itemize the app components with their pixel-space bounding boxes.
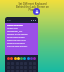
staticText: Good Evening (7, 24, 23, 27)
button[interactable]: Emoji (30, 57, 33, 60)
staticText: Ladies and Gentlemen, I'm getting to the… (7, 27, 28, 48)
button[interactable]: Emoji (14, 57, 17, 60)
button[interactable]: Emoji (23, 57, 26, 60)
button[interactable]: Emoji (10, 57, 13, 60)
button[interactable]: Emoji (33, 57, 36, 60)
button[interactable]: Lock (33, 8, 40, 15)
staticText: 9:41 (7, 19, 12, 22)
button[interactable]: Emoji (20, 57, 23, 60)
button[interactable]: Emoji (17, 57, 20, 60)
button[interactable]: Emoji (27, 57, 30, 60)
button[interactable]: Emoji (7, 57, 10, 60)
staticText: Set Different Keyboard Behind the Lock S… (16, 2, 49, 11)
